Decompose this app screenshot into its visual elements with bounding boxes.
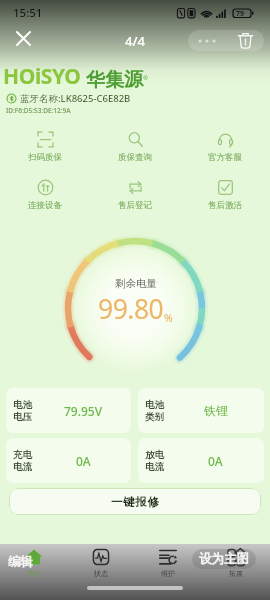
button[interactable]: 电池 电压 xyxy=(6,388,131,433)
button[interactable]: 设为主图 xyxy=(192,549,256,569)
button[interactable]: 官方客服 xyxy=(180,126,270,168)
staticText: 售后登记 xyxy=(118,200,152,211)
staticText: 蓝牙名称:LK8625-C6E82B xyxy=(20,92,131,105)
staticText: 质保查询 xyxy=(118,152,152,163)
staticText: 首页 xyxy=(27,569,41,578)
staticText: 连接设备 xyxy=(28,200,62,211)
staticText: % xyxy=(164,311,173,325)
button[interactable]: 拓展 xyxy=(202,544,270,578)
staticText: 编辑 xyxy=(8,554,33,568)
button[interactable]: 售后激活 xyxy=(180,174,270,216)
button[interactable]: 售后登记 xyxy=(90,174,180,216)
staticText: 设为主图 xyxy=(199,551,249,567)
button[interactable]: 状态 xyxy=(67,544,134,578)
button[interactable]: 编辑 xyxy=(8,554,33,568)
staticText: 铁锂 xyxy=(204,403,228,418)
staticText: 79 xyxy=(236,9,245,19)
button[interactable]: 充电 电流 xyxy=(6,438,131,483)
staticText: 维护 xyxy=(161,569,175,578)
staticText: 售后激活 xyxy=(208,200,242,211)
button[interactable]: 维护 xyxy=(134,544,202,578)
staticText: 官方客服 xyxy=(208,152,242,163)
staticText: 扫码质保 xyxy=(28,152,62,163)
button[interactable]: More options xyxy=(188,30,226,51)
staticText: 剩余电量 xyxy=(115,277,157,290)
staticText: 79.95V xyxy=(64,403,103,419)
staticText: 15:51 xyxy=(13,5,43,21)
button[interactable]: Close xyxy=(11,26,36,51)
button[interactable]: 首页 xyxy=(0,544,67,578)
staticText: 99.80 xyxy=(98,291,164,327)
staticText: 放电 电流 xyxy=(145,449,164,473)
staticText: HOiSYO xyxy=(3,62,81,91)
staticText: 电池 电压 xyxy=(13,399,32,423)
staticText: 充电 电流 xyxy=(13,449,32,473)
button[interactable]: 扫码质保 xyxy=(0,126,90,168)
staticText: 华集源 xyxy=(86,68,143,92)
staticText: 一键报修 xyxy=(111,495,160,509)
staticText: 电池 类别 xyxy=(145,399,164,423)
button[interactable]: Delete xyxy=(226,30,264,51)
button[interactable]: 一键报修 xyxy=(9,488,261,515)
staticText: ® xyxy=(143,74,148,82)
staticText: ID:F6:D5:53:DE:12:9A xyxy=(6,106,71,115)
button[interactable]: 放电 电流 xyxy=(138,438,264,483)
staticText: 0A xyxy=(76,453,91,469)
staticText: 拓展 xyxy=(229,569,243,578)
staticText: 状态 xyxy=(94,569,108,578)
staticText: 4/4 xyxy=(125,32,145,50)
button[interactable]: 连接设备 xyxy=(0,174,90,216)
button[interactable]: 电池 类别 xyxy=(138,388,264,433)
staticText: 0A xyxy=(208,453,223,469)
button[interactable]: 质保查询 xyxy=(90,126,180,168)
